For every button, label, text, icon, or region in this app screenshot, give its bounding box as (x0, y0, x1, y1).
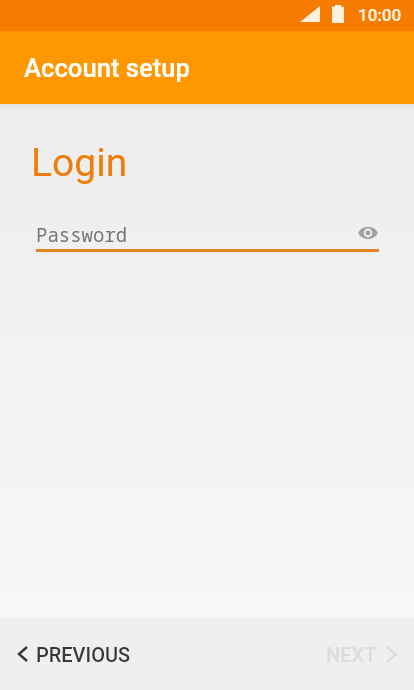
staticText: NEXT (326, 643, 377, 666)
staticText: Password (36, 222, 128, 248)
staticText: Account setup (24, 53, 190, 83)
button[interactable]: NEXT (318, 637, 406, 670)
staticText: 10:00 (358, 5, 402, 25)
button[interactable]: Password (36, 216, 346, 256)
staticText: Login (31, 140, 128, 186)
staticText: PREVIOUS (36, 643, 131, 666)
button[interactable]: Show password (356, 221, 380, 245)
button[interactable]: PREVIOUS (10, 637, 140, 670)
